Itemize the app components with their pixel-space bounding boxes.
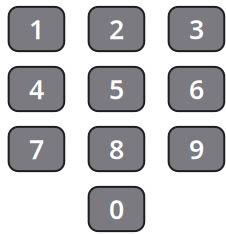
button[interactable]: 6 [169, 67, 224, 111]
staticText: 7 [29, 131, 44, 167]
button[interactable]: 8 [89, 127, 144, 171]
button[interactable]: 1 [9, 7, 64, 51]
button[interactable]: 9 [169, 127, 224, 171]
staticText: 4 [29, 71, 44, 107]
button[interactable]: 5 [89, 67, 144, 111]
button[interactable]: 4 [9, 67, 64, 111]
staticText: 3 [189, 11, 204, 47]
button[interactable]: 0 [89, 187, 144, 231]
button[interactable]: 2 [89, 7, 144, 51]
button[interactable]: 3 [169, 7, 224, 51]
staticText: 6 [189, 71, 204, 107]
button[interactable]: 7 [9, 127, 64, 171]
staticText: 1 [29, 11, 44, 47]
staticText: 5 [109, 71, 124, 107]
staticText: 9 [189, 131, 204, 167]
staticText: 2 [109, 11, 124, 47]
staticText: 8 [109, 131, 124, 167]
staticText: 0 [109, 191, 124, 227]
